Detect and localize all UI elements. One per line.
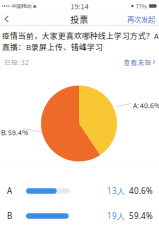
- staticText: 已投: 32: [4, 57, 29, 67]
- staticText: 投票: [70, 13, 88, 25]
- staticText: 77%: [136, 2, 148, 10]
- staticText: 59.4%: [129, 211, 153, 221]
- staticText: 19人: [107, 211, 125, 221]
- staticText: 疫情当前，大家更喜欢哪种线上学习方式？A 直播：B录屏上传、错峰学习: [2, 30, 159, 52]
- staticText: B: 59.4%: [1, 127, 28, 137]
- staticText: B: [7, 211, 12, 221]
- button[interactable]: Back: [0, 13, 16, 25]
- button[interactable]: 查看未投: [123, 57, 155, 67]
- staticText: 13人: [107, 186, 125, 196]
- button[interactable]: B: [0, 203, 159, 228]
- staticText: 40.6%: [129, 186, 153, 196]
- staticText: A: 40.6%: [133, 100, 159, 110]
- button[interactable]: A: [0, 178, 159, 203]
- staticText: A: [7, 186, 12, 196]
- button[interactable]: 再次发起: [127, 11, 159, 27]
- staticText: 再次发起: [127, 14, 155, 24]
- staticText: 中国移动: [11, 2, 31, 10]
- staticText: 查看未投: [123, 57, 151, 67]
- staticText: 19:14: [70, 1, 88, 11]
